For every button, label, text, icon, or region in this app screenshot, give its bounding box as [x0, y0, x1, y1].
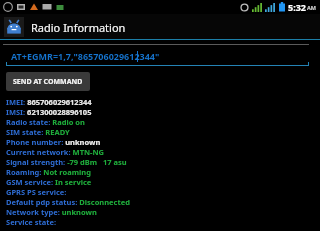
staticText: Phone number: unknown — [6, 137, 101, 147]
staticText: IMEI: 865706029612344 — [6, 97, 92, 107]
staticText: GPRS PS service: — [6, 187, 67, 197]
staticText: 5:32 — [288, 1, 306, 13]
staticText: Default pdp status: Disconnected — [6, 197, 130, 207]
staticText: Radio Information — [31, 20, 126, 35]
staticText: IMSI: 621300028896105 — [6, 107, 92, 117]
staticText: Service state: — [6, 217, 57, 227]
staticText: SIM state: READY — [6, 127, 70, 137]
staticText: Radio state: Radio on — [6, 117, 85, 127]
staticText: SEND AT COMMAND — [13, 77, 83, 87]
staticText: Current network: MTN-NG — [6, 147, 105, 157]
staticText: Roaming: Not roaming — [6, 167, 91, 177]
staticText: Network type: unknown — [6, 207, 97, 217]
staticText: AM — [307, 4, 316, 11]
button[interactable]: SEND AT COMMAND — [6, 72, 90, 91]
staticText: GSM service: In service — [6, 177, 92, 187]
staticText: AT+EGMR=1,7,"865706029612344" — [11, 50, 160, 62]
button[interactable]: App icon, Radio Information — [4, 17, 126, 37]
staticText: Signal strength: -79 dBm 17 asu — [6, 157, 127, 167]
